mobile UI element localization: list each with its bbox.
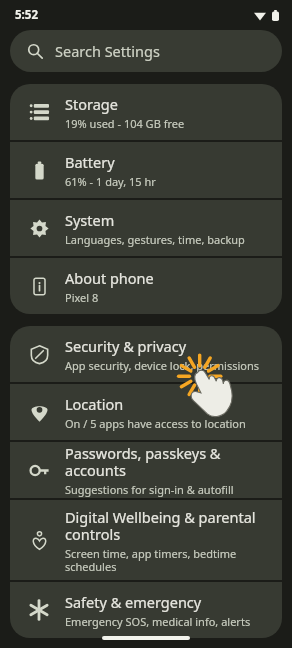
staticText: On / 5 apps have access to location bbox=[65, 416, 246, 431]
button[interactable]: Location bbox=[10, 384, 282, 440]
button[interactable]: Storage bbox=[10, 84, 282, 140]
staticText: Battery bbox=[65, 152, 115, 172]
staticText: Pixel 8 bbox=[65, 290, 99, 305]
staticText: Languages, gestures, time, backup bbox=[65, 232, 245, 247]
staticText: App security, device lock, permissions bbox=[65, 358, 260, 373]
staticText: 5:52 bbox=[15, 7, 38, 23]
button[interactable]: Battery bbox=[10, 142, 282, 198]
staticText: Suggestions for sign-in & autofill bbox=[65, 482, 234, 497]
staticText: Storage bbox=[65, 94, 118, 114]
button[interactable]: About phone bbox=[10, 258, 282, 314]
button[interactable]: Digital Wellbeing & parental controls bbox=[10, 500, 282, 580]
staticText: Passwords, passkeys & accounts bbox=[65, 443, 272, 480]
staticText: System bbox=[65, 210, 115, 230]
other: Search bbox=[27, 43, 43, 59]
button[interactable]: System bbox=[10, 200, 282, 256]
staticText: Location bbox=[65, 394, 124, 414]
button[interactable]: Safety & emergency bbox=[10, 582, 282, 638]
staticText: Digital Wellbeing & parental controls bbox=[65, 507, 272, 544]
staticText: Safety & emergency bbox=[65, 592, 202, 612]
button[interactable]: Search bbox=[10, 30, 282, 72]
staticText: About phone bbox=[65, 268, 154, 288]
staticText: Security & privacy bbox=[65, 336, 187, 356]
staticText: Search Settings bbox=[55, 41, 160, 61]
staticText: 19% used - 104 GB free bbox=[65, 116, 185, 131]
button[interactable]: Security & privacy bbox=[10, 326, 282, 382]
button[interactable]: Passwords, passkeys & accounts bbox=[10, 442, 282, 498]
staticText: 61% - 1 day, 15 hr bbox=[65, 174, 156, 189]
staticText: Screen time, app timers, bedtime schedul… bbox=[65, 546, 272, 574]
staticText: Emergency SOS, medical info, alerts bbox=[65, 614, 251, 629]
